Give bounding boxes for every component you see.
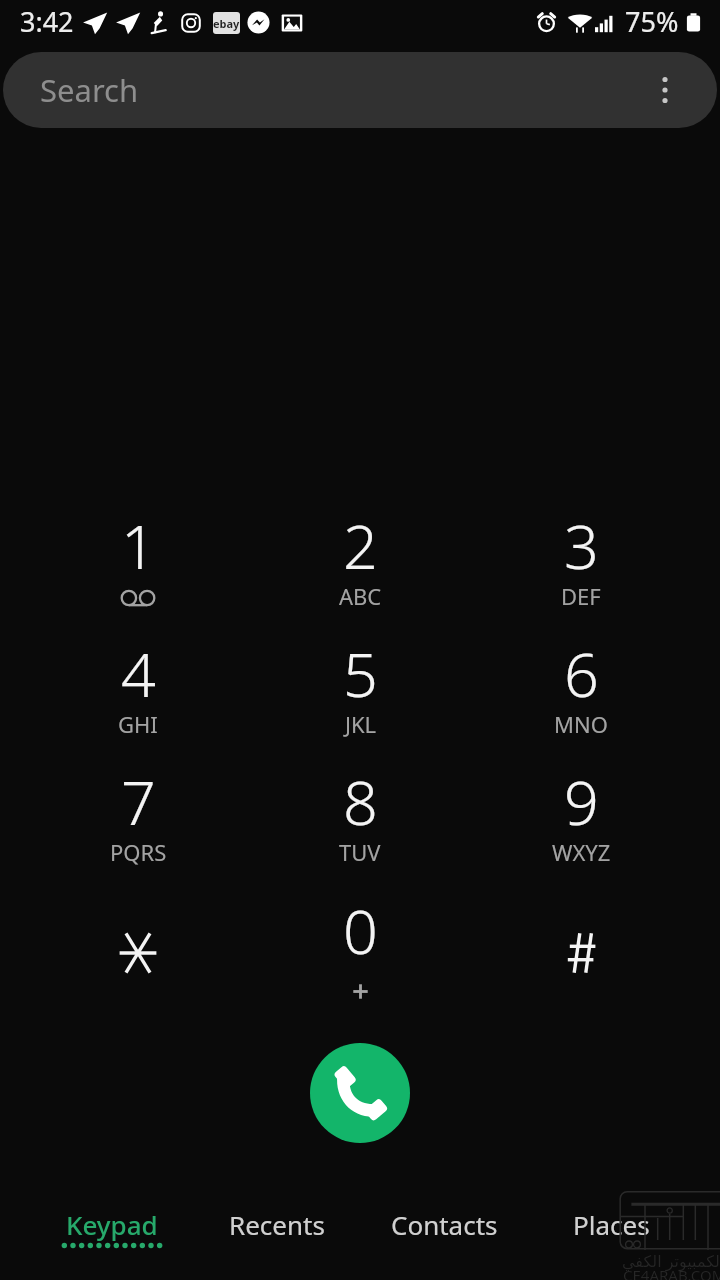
- staticText: Places: [573, 1207, 650, 1242]
- button[interactable]: Recents: [197, 1196, 357, 1266]
- button[interactable]: Contacts: [364, 1196, 524, 1266]
- button[interactable]: 1: [28, 504, 248, 622]
- staticText: 3:42: [20, 3, 74, 40]
- staticText: WXYZ: [552, 837, 611, 867]
- staticText: 75%: [625, 3, 679, 40]
- button[interactable]: 7: [28, 760, 248, 878]
- button[interactable]: 3: [471, 504, 691, 622]
- staticText: 6: [564, 632, 599, 715]
- button[interactable]: 0: [250, 889, 470, 1007]
- button[interactable]: 6: [471, 632, 691, 750]
- button[interactable]: 8: [250, 760, 470, 878]
- staticText: 1: [121, 504, 156, 587]
- staticText: 3: [564, 504, 599, 587]
- button[interactable]: [28, 889, 248, 1007]
- staticText: DEF: [561, 581, 601, 611]
- staticText: 0: [343, 889, 378, 972]
- button[interactable]: 5: [250, 632, 470, 750]
- button[interactable]: More options: [643, 68, 687, 112]
- button[interactable]: Call: [310, 1043, 410, 1143]
- staticText: 4: [121, 632, 156, 715]
- staticText: 5: [343, 632, 378, 715]
- staticText: Search: [40, 69, 139, 111]
- staticText: PQRS: [110, 837, 167, 867]
- staticText: GHI: [118, 709, 158, 739]
- staticText: 7: [121, 760, 156, 843]
- staticText: TUV: [339, 837, 381, 867]
- staticText: ebay: [213, 16, 240, 31]
- button[interactable]: 9: [471, 760, 691, 878]
- button[interactable]: [471, 889, 691, 1007]
- staticText: JKL: [345, 709, 377, 739]
- staticText: Recents: [229, 1207, 325, 1242]
- button[interactable]: Search: [3, 52, 717, 128]
- button[interactable]: Keypad: [32, 1196, 192, 1266]
- staticText: 2: [343, 504, 378, 587]
- staticText: ABC: [339, 581, 382, 611]
- staticText: CE4ARAB.COM: [623, 1265, 720, 1280]
- staticText: 9: [564, 760, 599, 843]
- button[interactable]: 4: [28, 632, 248, 750]
- staticText: الكمبيوتر الكفي: [622, 1250, 720, 1272]
- staticText: MNO: [554, 709, 608, 739]
- staticText: Keypad: [66, 1207, 158, 1242]
- button[interactable]: 2: [250, 504, 470, 622]
- staticText: Contacts: [391, 1207, 498, 1242]
- button[interactable]: Places: [531, 1196, 691, 1266]
- staticText: 8: [343, 760, 378, 843]
